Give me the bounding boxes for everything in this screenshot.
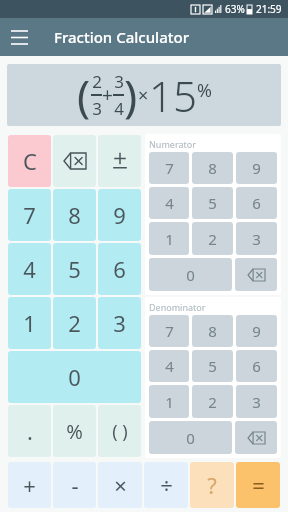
button[interactable]: 1 <box>149 222 189 255</box>
button[interactable]: ? <box>190 462 234 508</box>
staticText: % <box>197 78 212 103</box>
button[interactable]: 3 <box>98 297 141 349</box>
button[interactable]: 7 <box>8 189 51 241</box>
button[interactable]: Denominator backspace <box>235 421 277 454</box>
staticText: Denominator <box>149 301 206 313</box>
staticText: 0 <box>68 362 81 392</box>
button[interactable]: 0 <box>149 258 232 291</box>
button[interactable]: 4 <box>149 350 189 382</box>
staticText: 1 <box>165 229 174 249</box>
button[interactable]: = <box>236 462 280 508</box>
staticText: 3 <box>113 308 126 338</box>
staticText: 2 <box>92 70 102 93</box>
staticText: + <box>23 470 36 500</box>
button[interactable]: 6 <box>236 187 277 219</box>
staticText: 7 <box>165 321 174 341</box>
button[interactable]: 9 <box>236 315 277 347</box>
button[interactable]: . <box>8 405 51 457</box>
button[interactable]: 5 <box>53 243 96 295</box>
staticText: ) <box>124 65 138 125</box>
staticText: 7 <box>165 158 174 178</box>
staticText: 8 <box>68 200 81 230</box>
staticText: 5 <box>208 356 217 376</box>
button[interactable]: 5 <box>192 187 233 219</box>
staticText: 6 <box>252 356 261 376</box>
button[interactable]: 4 <box>8 243 51 295</box>
button[interactable]: 2 <box>192 222 233 255</box>
button[interactable]: ( ) <box>98 405 141 457</box>
staticText: 0 <box>186 265 195 285</box>
button[interactable]: 7 <box>149 315 189 347</box>
staticText: 9 <box>113 200 126 230</box>
staticText: . <box>27 416 33 446</box>
button[interactable]: ÷ <box>144 462 188 508</box>
staticText: 0 <box>186 428 195 448</box>
staticText: 15 <box>149 67 197 124</box>
button[interactable]: 1 <box>8 297 51 349</box>
staticText: ? <box>207 470 217 500</box>
button[interactable]: 0 <box>8 351 141 403</box>
staticText: 4 <box>165 356 174 376</box>
button[interactable]: 5 <box>192 350 233 382</box>
staticText: Fraction Calculator <box>54 27 189 47</box>
staticText: 5 <box>208 193 217 213</box>
staticText: 8 <box>208 158 217 178</box>
button[interactable]: 8 <box>192 315 233 347</box>
button[interactable]: 4 <box>149 187 189 219</box>
staticText: = <box>252 470 265 500</box>
staticText: Numerator <box>149 138 196 150</box>
staticText: 4 <box>114 97 124 120</box>
staticText: 2 <box>208 392 217 412</box>
staticText: 3 <box>114 70 124 93</box>
staticText: 2 <box>68 308 81 338</box>
staticText: ÷ <box>160 470 173 500</box>
button[interactable]: + <box>8 462 51 508</box>
staticText: 3 <box>92 97 102 120</box>
button[interactable]: 1 <box>149 385 189 418</box>
button[interactable]: Numerator backspace <box>235 258 277 291</box>
staticText: 1 <box>165 392 174 412</box>
staticText: - <box>71 470 79 500</box>
button[interactable]: 0 <box>149 421 232 454</box>
button[interactable]: 2 <box>192 385 233 418</box>
button[interactable]: 9 <box>236 152 277 184</box>
staticText: 6 <box>252 193 261 213</box>
staticText: 1 <box>23 308 36 338</box>
button[interactable]: 8 <box>53 189 96 241</box>
button[interactable]: 2 <box>53 297 96 349</box>
staticText: 21:59 <box>256 2 282 16</box>
staticText: × <box>114 470 127 500</box>
button[interactable]: Menu <box>0 18 38 56</box>
button[interactable]: - <box>53 462 96 508</box>
button[interactable]: × <box>98 462 142 508</box>
button[interactable]: 6 <box>98 243 141 295</box>
button[interactable]: Backspace <box>53 135 96 187</box>
staticText: 7 <box>23 200 36 230</box>
staticText: 4 <box>165 193 174 213</box>
button[interactable]: C <box>8 135 51 187</box>
staticText: C <box>23 146 37 176</box>
staticText: ( <box>77 65 91 125</box>
staticText: ( ) <box>112 419 128 444</box>
button[interactable]: 3 <box>236 385 277 418</box>
staticText: 5 <box>68 254 81 284</box>
button[interactable]: 7 <box>149 152 189 184</box>
button[interactable]: Plus minus <box>98 135 141 187</box>
staticText: 3 <box>252 229 261 249</box>
button[interactable]: % <box>53 405 96 457</box>
staticText: 6 <box>113 254 126 284</box>
staticText: × <box>138 83 149 108</box>
button[interactable]: 6 <box>236 350 277 382</box>
staticText: 8 <box>208 321 217 341</box>
staticText: 3 <box>252 392 261 412</box>
staticText: 9 <box>252 158 261 178</box>
staticText: 63% <box>225 2 245 16</box>
staticText: 4 <box>23 254 36 284</box>
staticText: 2 <box>208 229 217 249</box>
button[interactable]: 9 <box>98 189 141 241</box>
staticText: + <box>102 82 113 108</box>
staticText: % <box>66 418 83 445</box>
button[interactable]: 8 <box>192 152 233 184</box>
button[interactable]: 3 <box>236 222 277 255</box>
staticText: 9 <box>252 321 261 341</box>
